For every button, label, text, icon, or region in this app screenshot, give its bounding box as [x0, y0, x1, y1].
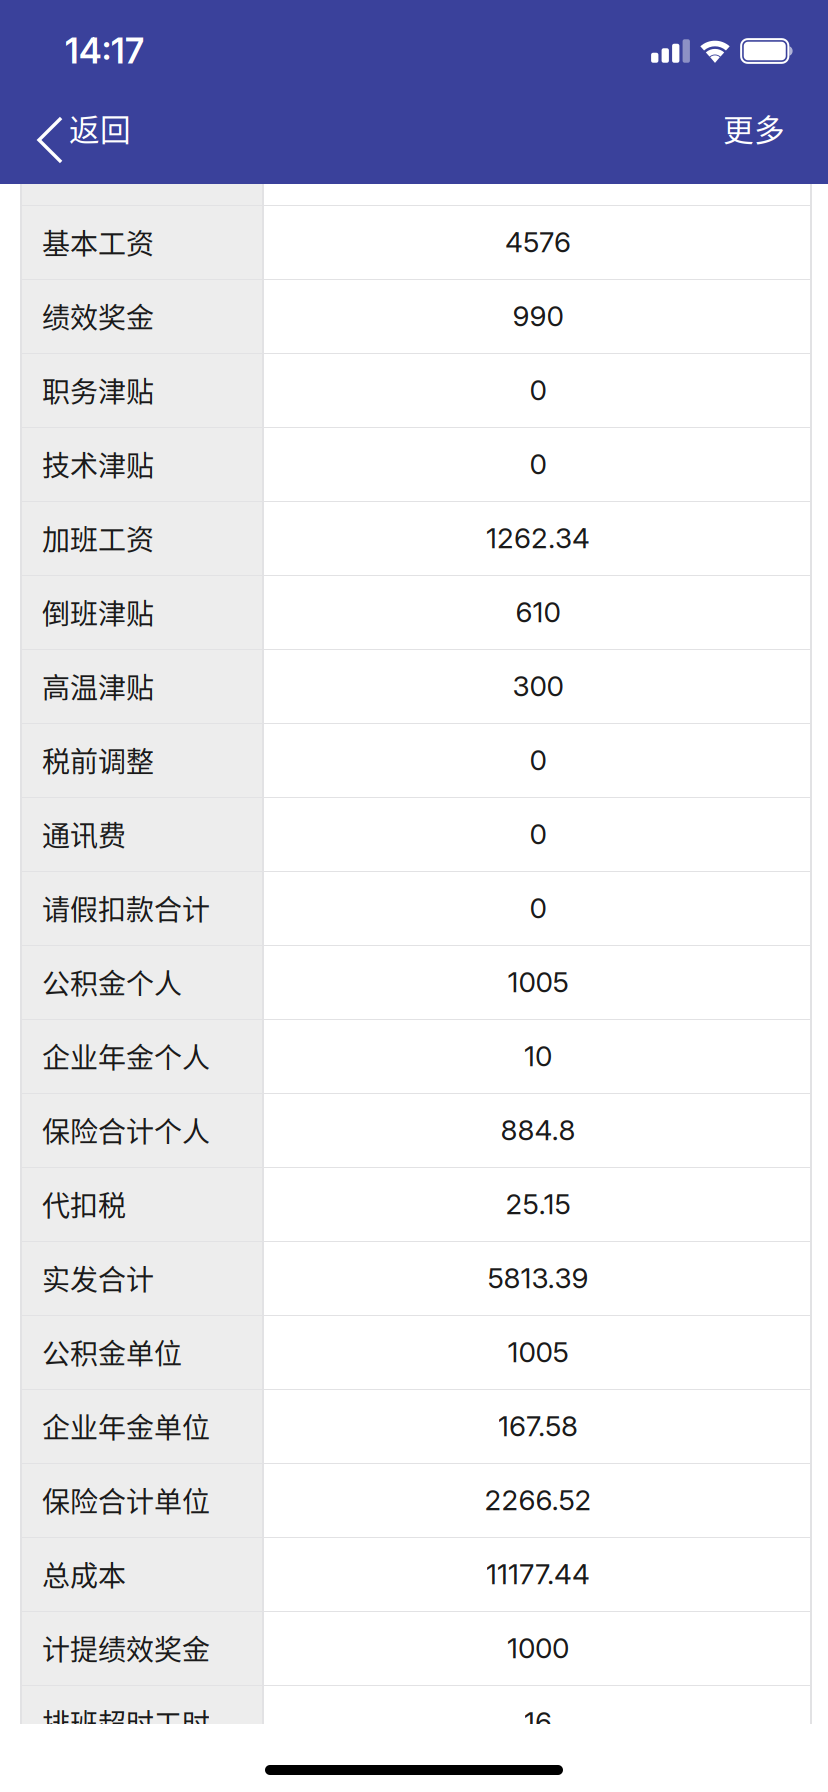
staticText: 基本工资	[42, 222, 154, 262]
staticText: 0	[529, 817, 546, 851]
staticText: 请假扣款合计	[42, 888, 210, 928]
staticText: 公积金个人	[42, 962, 182, 1002]
staticText: 0	[529, 743, 546, 777]
staticText: 0	[529, 891, 546, 925]
staticText: 610	[515, 595, 560, 629]
staticText: 990	[512, 299, 563, 333]
staticText: 税前调整	[42, 740, 154, 780]
button[interactable]: 返回	[0, 88, 153, 184]
staticText: 绩效奖金	[42, 296, 154, 336]
staticText: 加班工资	[42, 518, 154, 558]
staticText: 0	[529, 447, 546, 481]
staticText: 排班超时工时	[42, 1702, 210, 1742]
staticText: 4576	[505, 225, 571, 259]
staticText: 14:17	[65, 30, 144, 72]
button[interactable]: 更多	[701, 88, 807, 184]
staticText: 10	[524, 1039, 552, 1073]
staticText: 技术津贴	[42, 444, 154, 484]
staticText: 保险合计个人	[42, 1110, 210, 1150]
staticText: 总成本	[42, 1554, 126, 1594]
staticText: 25.15	[505, 1187, 570, 1221]
staticText: 通讯费	[42, 814, 126, 854]
staticText: 倒班津贴	[42, 592, 154, 632]
staticText: 300	[512, 669, 563, 703]
staticText: 实发合计	[42, 1258, 154, 1298]
staticText: 公积金单位	[42, 1332, 182, 1372]
staticText: 更多	[723, 106, 785, 150]
staticText: 企业年金个人	[42, 1036, 210, 1076]
staticText: 0	[529, 373, 546, 407]
staticText: 5813.39	[487, 1261, 588, 1295]
staticText: 16	[524, 1705, 552, 1739]
staticText: 1000	[507, 1631, 569, 1665]
staticText: 高温津贴	[42, 666, 154, 706]
staticText: 代扣税	[42, 1184, 126, 1224]
staticText: 11177.44	[486, 1557, 590, 1591]
staticText: 1262.34	[486, 521, 590, 555]
staticText: 保险合计单位	[42, 1480, 210, 1520]
staticText: 企业年金单位	[42, 1406, 210, 1446]
staticText: 1005	[507, 1335, 568, 1369]
staticText: 167.58	[498, 1409, 578, 1443]
staticText: 计提绩效奖金	[42, 1628, 210, 1668]
staticText: 返回	[69, 106, 131, 150]
staticText: 职务津贴	[42, 370, 154, 410]
staticText: 1005	[507, 965, 568, 999]
staticText: 884.8	[500, 1113, 575, 1147]
staticText: 2266.52	[484, 1483, 591, 1517]
